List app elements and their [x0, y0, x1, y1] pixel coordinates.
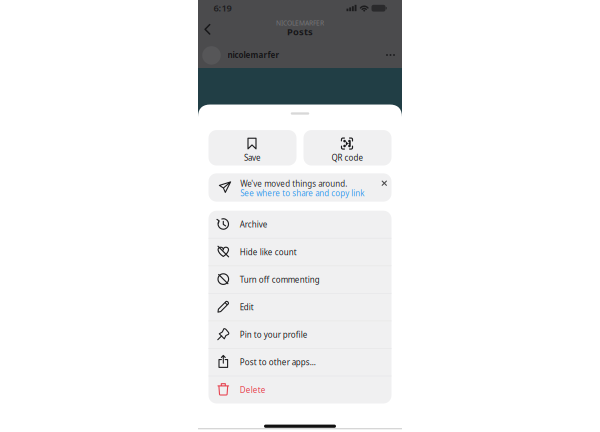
staticText: Hide like count [240, 247, 297, 257]
button[interactable]: Save [208, 130, 296, 166]
staticText: Delete [240, 384, 266, 395]
staticText: Posts [287, 25, 313, 38]
button[interactable]: Edit [208, 293, 391, 321]
staticText: See where to share and copy link [240, 188, 364, 198]
staticText: Turn off commenting [240, 274, 320, 285]
button[interactable]: Back [200, 22, 214, 36]
button[interactable]: Turn off commenting [208, 266, 391, 293]
button[interactable]: Post to other apps... [208, 348, 391, 376]
button[interactable]: Archive [208, 211, 391, 238]
button[interactable]: See where to share and copy link [240, 188, 364, 198]
staticText: NICOLEMARFER [276, 18, 324, 27]
staticText: nicolemarfer [227, 49, 279, 60]
staticText: Archive [240, 219, 268, 230]
staticText: Edit [240, 302, 254, 312]
button[interactable]: Hide like count [208, 238, 391, 266]
staticText: 6:19 [213, 2, 231, 14]
button[interactable]: Pin to your profile [208, 321, 391, 348]
button[interactable]: QR code [303, 130, 391, 166]
button[interactable]: Dismiss [379, 178, 389, 188]
staticText: Post to other apps... [240, 357, 316, 367]
button[interactable]: Delete [208, 376, 391, 404]
staticText: QR code [331, 152, 363, 163]
staticText: We've moved things around. [240, 178, 347, 189]
button[interactable]: More options [382, 49, 398, 61]
staticText: Save [244, 152, 261, 163]
staticText: Pin to your profile [240, 329, 308, 340]
